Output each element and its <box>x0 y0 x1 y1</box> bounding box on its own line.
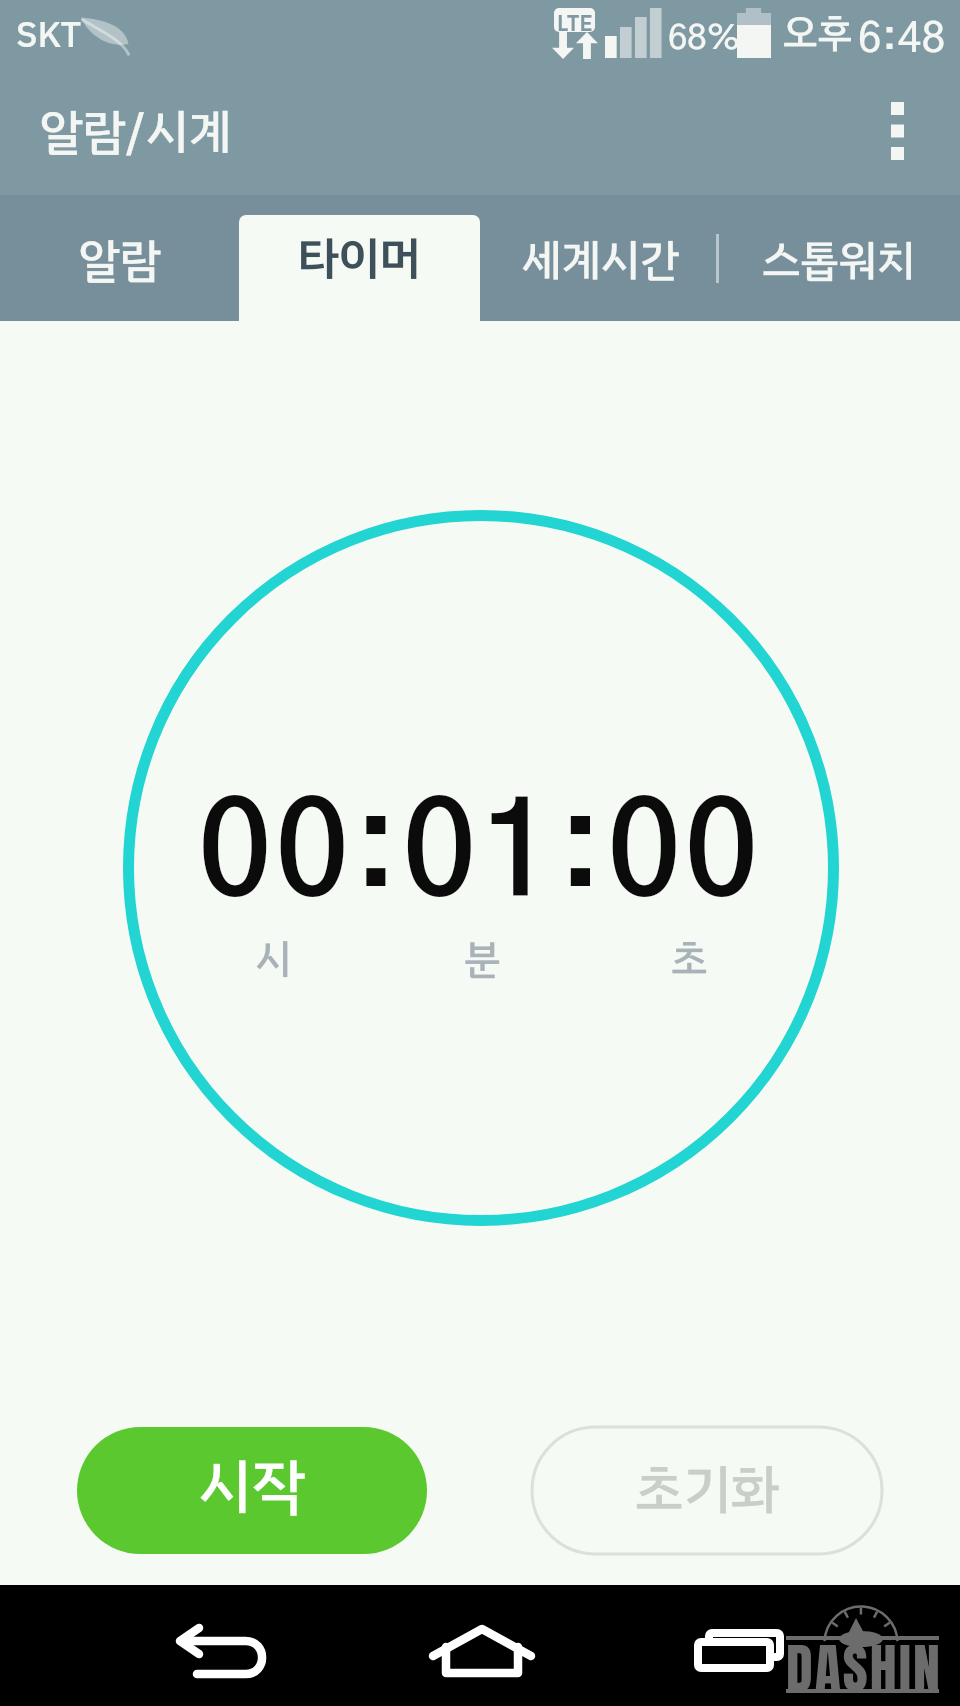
staticText: 68% <box>668 22 741 56</box>
button[interactable]: Home <box>360 1585 600 1706</box>
staticText: LTE <box>557 8 593 31</box>
staticText: 초 <box>671 929 708 991</box>
staticText: 알람 <box>79 226 162 295</box>
staticText: 시작 <box>198 1442 306 1532</box>
staticText: 00:01:00 <box>198 793 762 921</box>
button[interactable]: 타이머 <box>239 215 480 321</box>
staticText: 세계시간 <box>522 227 679 293</box>
button[interactable]: 스톱워치 <box>717 195 960 321</box>
button[interactable]: More options <box>856 85 938 167</box>
button[interactable]: 시작 <box>77 1427 427 1554</box>
button[interactable]: 세계시간 <box>483 195 717 321</box>
staticText: 스톱워치 <box>762 228 916 293</box>
staticText: DASHIN <box>786 1627 942 1706</box>
staticText: 분 <box>464 929 501 991</box>
staticText: 초기화 <box>635 1449 780 1530</box>
button[interactable]: 알람 <box>0 195 240 321</box>
staticText: 오후 <box>783 4 853 63</box>
button[interactable]: Recent apps <box>620 1585 860 1706</box>
staticText: 타이머 <box>298 224 422 293</box>
button[interactable]: 초기화 <box>532 1427 882 1554</box>
staticText: SKT <box>16 8 82 62</box>
staticText: 6:48 <box>858 19 947 60</box>
staticText: 시 <box>255 929 292 991</box>
staticText: 알람/시계 <box>40 96 232 168</box>
button[interactable]: Back <box>101 1585 341 1706</box>
